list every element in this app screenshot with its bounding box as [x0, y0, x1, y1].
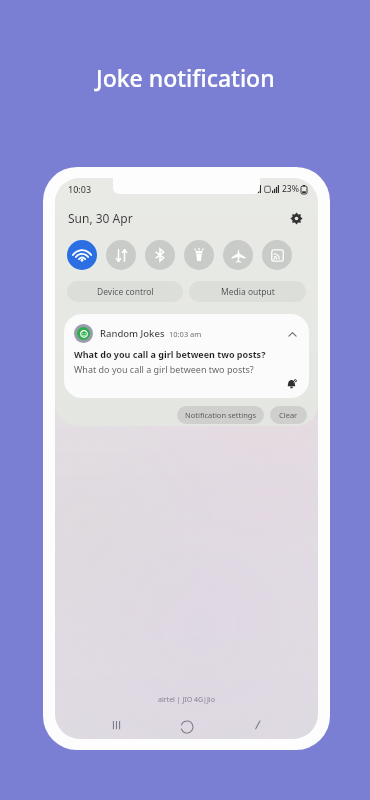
staticText: Media output [221, 286, 275, 298]
button[interactable]: Mobile data [106, 240, 136, 270]
staticText: 10:03 [68, 183, 92, 195]
staticText: Notification settings [185, 410, 256, 420]
button[interactable]: Flashlight [184, 240, 214, 270]
button[interactable]: Home [177, 721, 197, 739]
button[interactable]: Settings [286, 208, 306, 228]
button[interactable]: Back [247, 721, 267, 739]
button[interactable]: Airplane mode [223, 240, 253, 270]
button[interactable]: Media output [189, 281, 306, 302]
button[interactable]: Notification settings [185, 406, 256, 424]
button[interactable]: Device control [67, 281, 183, 302]
staticText: Joke notification [96, 62, 275, 93]
staticText: 23% [282, 183, 299, 195]
button[interactable]: Hotspot [262, 240, 292, 270]
staticText: 10:03 am [169, 329, 202, 339]
button[interactable]: Wi-Fi [67, 240, 97, 270]
staticText: What do you call a girl between two post… [74, 363, 254, 375]
button[interactable]: Recents [106, 721, 126, 739]
button[interactable]: Clear [279, 406, 298, 424]
staticText: Clear [279, 410, 298, 420]
button[interactable]: Silence notifications [283, 376, 299, 392]
staticText: What do you call a girl between two post… [74, 348, 266, 360]
button[interactable]: Collapse [284, 326, 300, 342]
staticText: Device control [97, 286, 154, 298]
button[interactable]: Bluetooth [145, 240, 175, 270]
staticText: airtel | JIO 4G|Jio [158, 695, 215, 705]
staticText: Random Jokes [100, 327, 165, 340]
button[interactable]: Random Jokes [64, 314, 309, 398]
staticText: Sun, 30 Apr [68, 210, 133, 226]
